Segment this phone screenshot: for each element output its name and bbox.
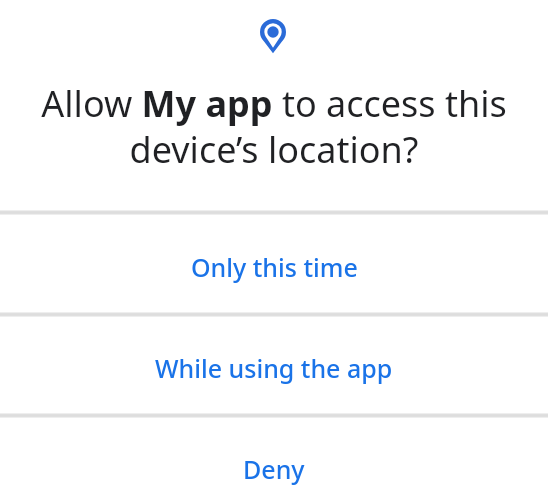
button[interactable]: Only this time xyxy=(0,214,548,313)
staticText: Deny xyxy=(243,452,305,486)
staticText: While using the app xyxy=(155,351,393,385)
button[interactable]: Deny xyxy=(0,417,548,502)
staticText: Only this time xyxy=(191,250,358,284)
button[interactable]: While using the app xyxy=(0,316,548,414)
staticText: Allow My app to access this device’s loc… xyxy=(0,79,548,174)
